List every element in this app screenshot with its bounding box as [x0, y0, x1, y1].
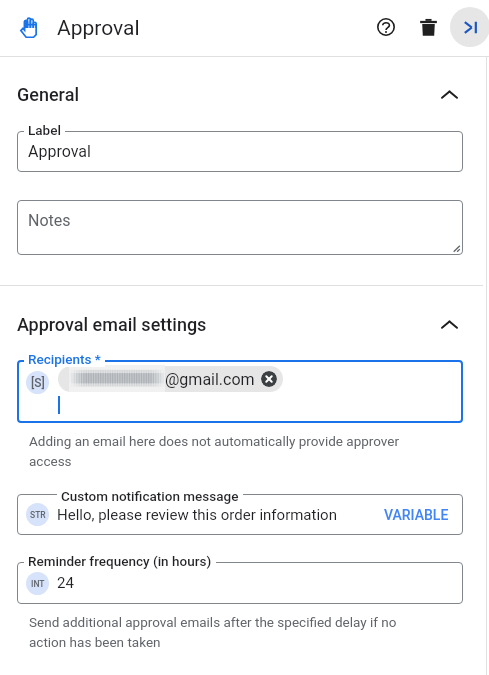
staticText: @gmail.com [165, 370, 255, 389]
staticText: 24 [57, 574, 74, 592]
staticText: Hello, please review this order informat… [57, 506, 337, 524]
button[interactable]: Remove recipient [261, 371, 277, 387]
staticText: Reminder frequency (in hours) [28, 553, 212, 569]
staticText: Approval [28, 142, 91, 161]
staticText: Notes [28, 211, 71, 230]
staticText: INT [31, 579, 45, 589]
button[interactable]: Next step [450, 7, 489, 47]
button[interactable]: VARIABLE [376, 503, 457, 527]
staticText: Adding an email here does not automatica… [29, 433, 423, 469]
button[interactable]: Approval email settings [0, 307, 489, 341]
staticText: Recipients * [28, 351, 101, 367]
button[interactable]: General [0, 77, 489, 111]
button[interactable]: INT [17, 562, 463, 604]
button[interactable]: Delete [408, 7, 448, 47]
button[interactable]: Approval [17, 131, 463, 172]
staticText: Custom notification message [61, 488, 239, 504]
staticText: VARIABLE [384, 507, 449, 523]
staticText: Label [28, 122, 61, 138]
staticText: General [17, 84, 80, 105]
staticText: Approval [57, 16, 140, 41]
staticText: Send additional approval emails after th… [29, 614, 423, 650]
button[interactable]: [S] [17, 360, 463, 423]
staticText: STR [30, 510, 46, 520]
button[interactable]: Notes [17, 200, 463, 255]
staticText: [S] [31, 376, 45, 390]
button[interactable]: Help [366, 7, 406, 47]
button[interactable]: STR [17, 494, 463, 535]
button[interactable]: Approval step icon [14, 14, 42, 42]
staticText: Approval email settings [17, 314, 207, 335]
